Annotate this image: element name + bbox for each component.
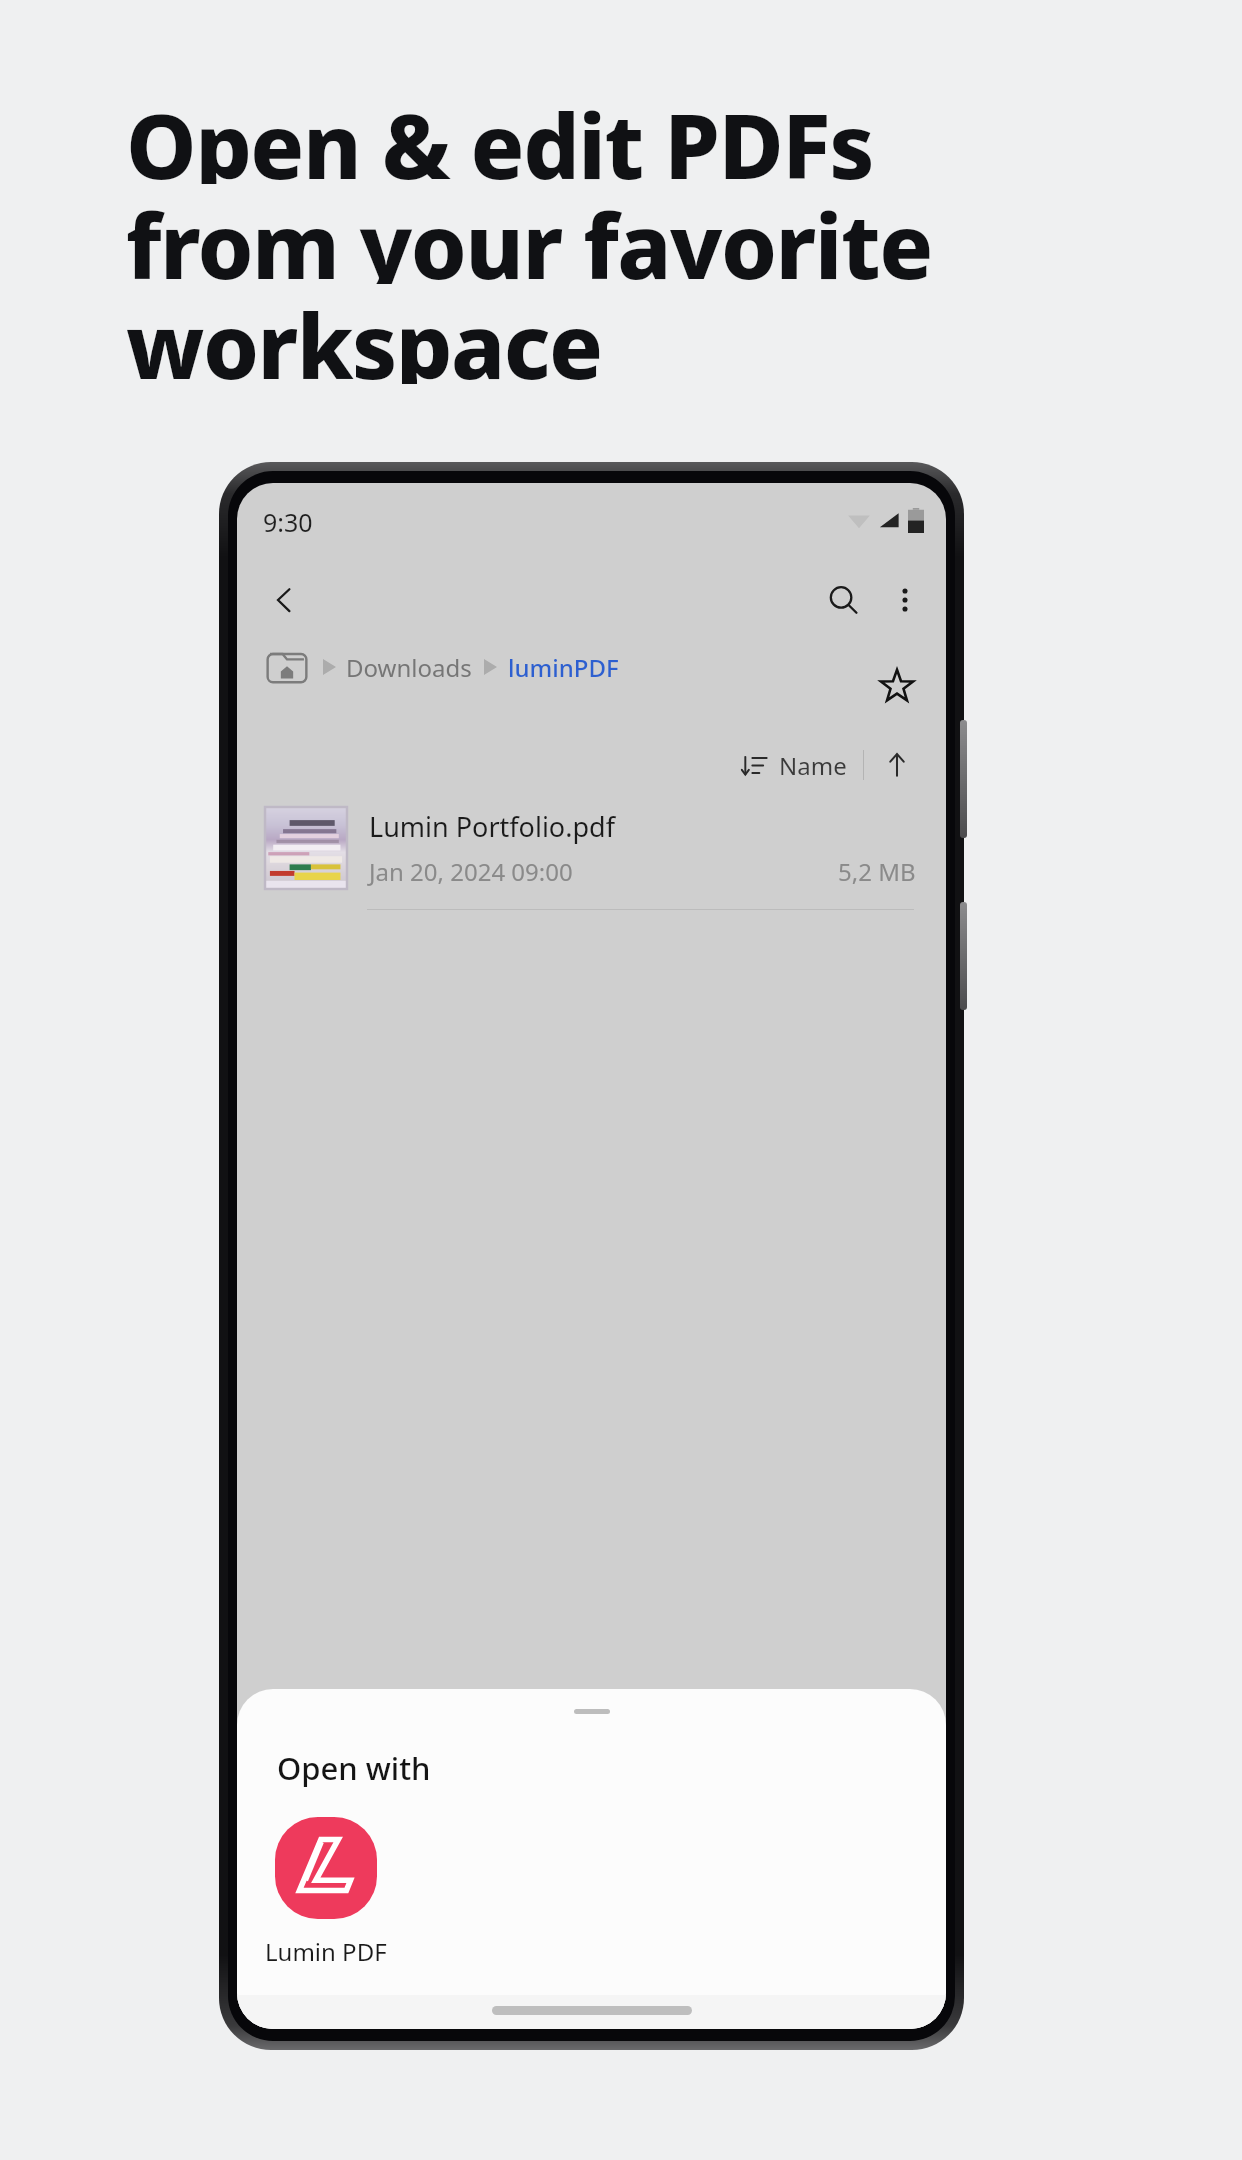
staticText: Open with — [277, 1747, 431, 1789]
button[interactable]: Name — [735, 741, 853, 790]
staticText: from your favorite — [126, 184, 932, 284]
button[interactable]: Lumin Portfolio.pdf — [237, 803, 946, 910]
staticText: Name — [779, 749, 847, 782]
button[interactable]: Back — [253, 569, 315, 631]
staticText: luminPDF — [508, 651, 619, 684]
staticText: Downloads — [346, 651, 472, 684]
staticText: 9:30 — [263, 505, 313, 539]
button[interactable]: luminPDF — [508, 651, 619, 684]
button[interactable]: Favorite — [866, 655, 928, 717]
button[interactable]: Downloads — [346, 651, 472, 684]
button[interactable]: Sort ascending — [870, 738, 924, 792]
staticText: Lumin PDF — [265, 1935, 387, 1968]
button[interactable]: Search — [812, 569, 874, 631]
staticText: 5,2 MB — [838, 855, 916, 888]
staticText: Open & edit PDFs — [126, 84, 874, 184]
button[interactable]: Home folder — [263, 645, 311, 689]
staticText: Jan 20, 2024 09:00 — [369, 855, 573, 888]
button[interactable]: Lumin PDF — [265, 1817, 387, 1968]
button[interactable]: More options — [874, 569, 936, 631]
staticText: workspace — [126, 284, 602, 384]
staticText: Lumin Portfolio.pdf — [369, 808, 615, 845]
